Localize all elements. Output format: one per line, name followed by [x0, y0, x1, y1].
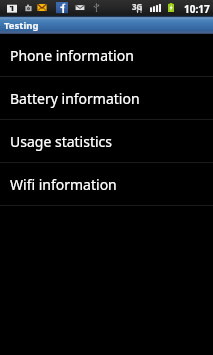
button[interactable]: Usage statistics — [0, 120, 213, 163]
button[interactable]: Phone information — [0, 34, 213, 77]
staticText: 10:17 — [184, 2, 210, 16]
staticText: Usage statistics — [10, 132, 113, 151]
button[interactable]: Wifi information — [0, 163, 213, 206]
staticText: Wifi information — [10, 175, 117, 194]
staticText: 3G — [132, 1, 143, 12]
staticText: Battery information — [10, 89, 140, 108]
staticText: Testing — [4, 19, 39, 32]
staticText: Phone information — [10, 46, 134, 65]
button[interactable]: Battery information — [0, 77, 213, 120]
